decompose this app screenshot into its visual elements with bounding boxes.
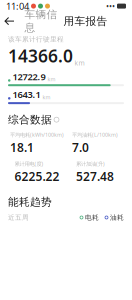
staticText: 油耗 [110,213,124,222]
button[interactable]: 用车报告 [60,15,110,28]
staticText: 1643.1 [12,88,40,101]
staticText: 车辆信息 [24,8,57,34]
staticText: 综合数据 [8,113,52,126]
staticText: 平均电耗(kWh/100km) [10,131,64,138]
staticText: 14366.0 [8,44,73,67]
staticText: 7.0 [72,139,89,155]
staticText: 能耗趋势 [8,195,52,208]
staticText: 累计用电(度) [14,160,43,167]
staticText: km [42,93,50,101]
staticText: 累计加油(升) [76,160,105,167]
staticText: 6225.22 [14,168,59,184]
staticText: 12722.9 [12,70,45,83]
staticText: 电耗 [85,213,99,222]
staticText: 11:04 [6,0,29,12]
staticText: km [47,76,55,83]
button[interactable]: 车辆信息 [21,8,60,34]
staticText: 18.1 [10,139,34,155]
staticText: ••• [106,1,115,11]
staticText: 527.48 [76,168,114,184]
staticText: 用车报告 [63,15,107,28]
staticText: km [74,58,84,67]
staticText: 平均油耗(L/100km) [72,131,118,138]
staticText: 近五周 [8,213,29,222]
button[interactable]: 返回 [0,13,19,29]
staticText: 该车累计行驶里程 [8,35,64,43]
